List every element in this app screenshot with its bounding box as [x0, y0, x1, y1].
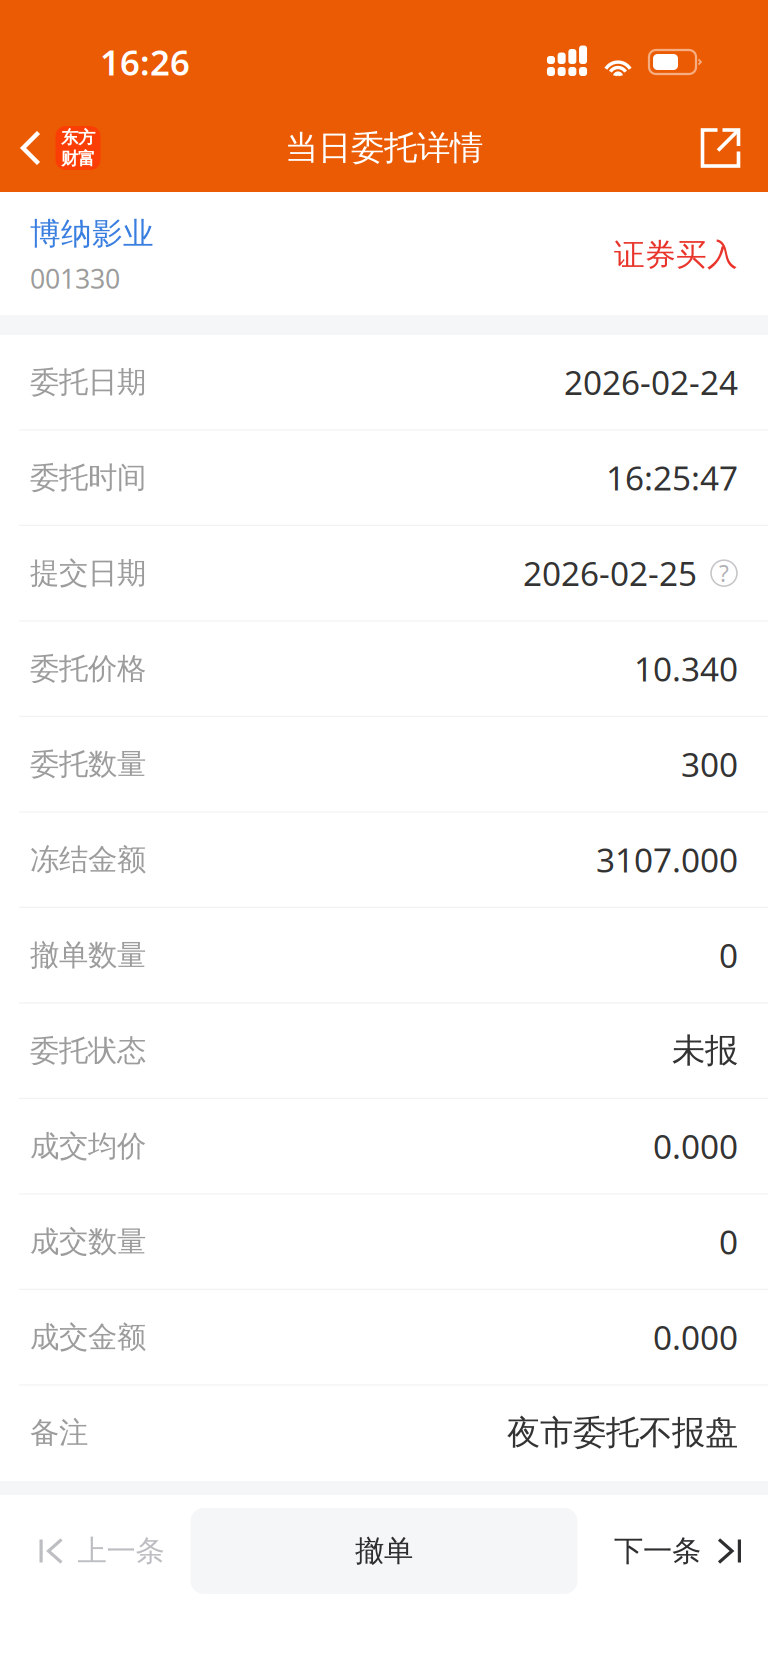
- staticText: 下一条: [614, 1533, 701, 1569]
- staticText: 2026-02-24: [564, 360, 738, 404]
- staticText: 委托价格: [30, 651, 146, 687]
- staticText: 2026-02-25: [523, 551, 697, 595]
- staticText: 冻结金额: [30, 842, 146, 878]
- staticText: 16:25:47: [606, 455, 738, 500]
- staticText: ?: [719, 558, 729, 588]
- staticText: 当日委托详情: [285, 127, 483, 168]
- staticText: 成交均价: [30, 1128, 146, 1164]
- staticText: 0.000: [653, 1124, 738, 1168]
- staticText: 夜市委托不报盘: [507, 1412, 738, 1453]
- staticText: 0.000: [653, 1315, 738, 1359]
- staticText: 001330: [30, 261, 120, 296]
- staticText: 委托时间: [30, 460, 146, 496]
- staticText: 0: [719, 933, 738, 977]
- staticText: 委托数量: [30, 746, 146, 782]
- staticText: 博纳影业: [30, 215, 154, 253]
- staticText: 成交金额: [30, 1319, 146, 1355]
- staticText: 证券买入: [614, 236, 738, 274]
- staticText: 提交日期: [30, 555, 146, 591]
- staticText: 未报: [672, 1030, 738, 1071]
- staticText: 撤单: [355, 1533, 413, 1569]
- staticText: 备注: [30, 1415, 88, 1451]
- staticText: 撤单数量: [30, 937, 146, 973]
- staticText: 0: [719, 1219, 738, 1264]
- staticText: 东方: [61, 127, 95, 148]
- button[interactable]: 撤单: [190, 1508, 577, 1594]
- button[interactable]: 下一条: [577, 1495, 768, 1607]
- staticText: 成交数量: [30, 1224, 146, 1260]
- staticText: 16:26: [100, 39, 190, 85]
- staticText: 300: [681, 742, 738, 786]
- staticText: 委托状态: [30, 1033, 146, 1069]
- button[interactable]: Back: [0, 100, 114, 196]
- staticText: 委托日期: [30, 364, 146, 400]
- staticText: 上一条: [77, 1533, 164, 1569]
- staticText: 10.340: [634, 646, 738, 691]
- staticText: 3107.000: [596, 837, 738, 882]
- button[interactable]: 上一条: [0, 1495, 190, 1607]
- button[interactable]: Share: [686, 100, 768, 196]
- staticText: 财富: [61, 148, 95, 169]
